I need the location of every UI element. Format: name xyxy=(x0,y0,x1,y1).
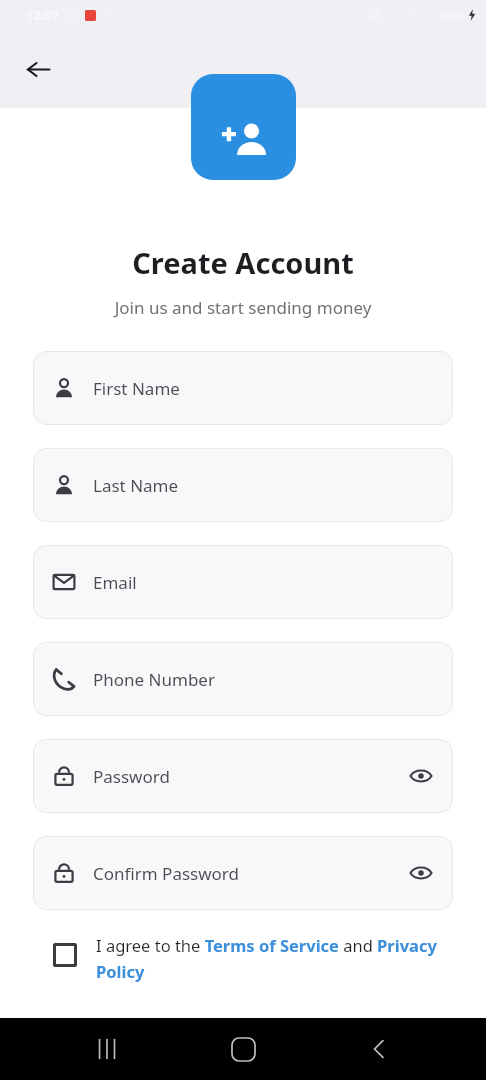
button[interactable]: Recent apps xyxy=(78,1020,136,1078)
button[interactable]: I agree to the Terms of Service and Priv… xyxy=(33,934,453,983)
staticText: Create Account xyxy=(0,243,486,282)
button[interactable]: Password xyxy=(33,739,453,813)
button[interactable]: Phone Number xyxy=(33,642,453,716)
button[interactable]: Last Name xyxy=(33,448,453,522)
button[interactable]: Back xyxy=(350,1020,408,1078)
staticText: Confirm Password xyxy=(93,862,399,885)
staticText: Password xyxy=(93,765,399,788)
button[interactable]: Back xyxy=(14,45,62,93)
button[interactable]: First Name xyxy=(33,351,453,425)
button[interactable]: Show password xyxy=(399,851,443,895)
staticText: I agree to the Terms of Service and Priv… xyxy=(96,934,453,983)
button[interactable]: Email xyxy=(33,545,453,619)
staticText: Phone Number xyxy=(93,668,453,691)
button[interactable]: Home xyxy=(214,1020,272,1078)
staticText: 12:07 xyxy=(26,6,60,24)
button[interactable]: Show password xyxy=(399,754,443,798)
button[interactable]: Confirm Password xyxy=(33,836,453,910)
staticText: Join us and start sending money xyxy=(0,296,486,319)
staticText: First Name xyxy=(93,377,453,400)
staticText: Last Name xyxy=(93,474,453,497)
staticText: Email xyxy=(93,571,453,594)
